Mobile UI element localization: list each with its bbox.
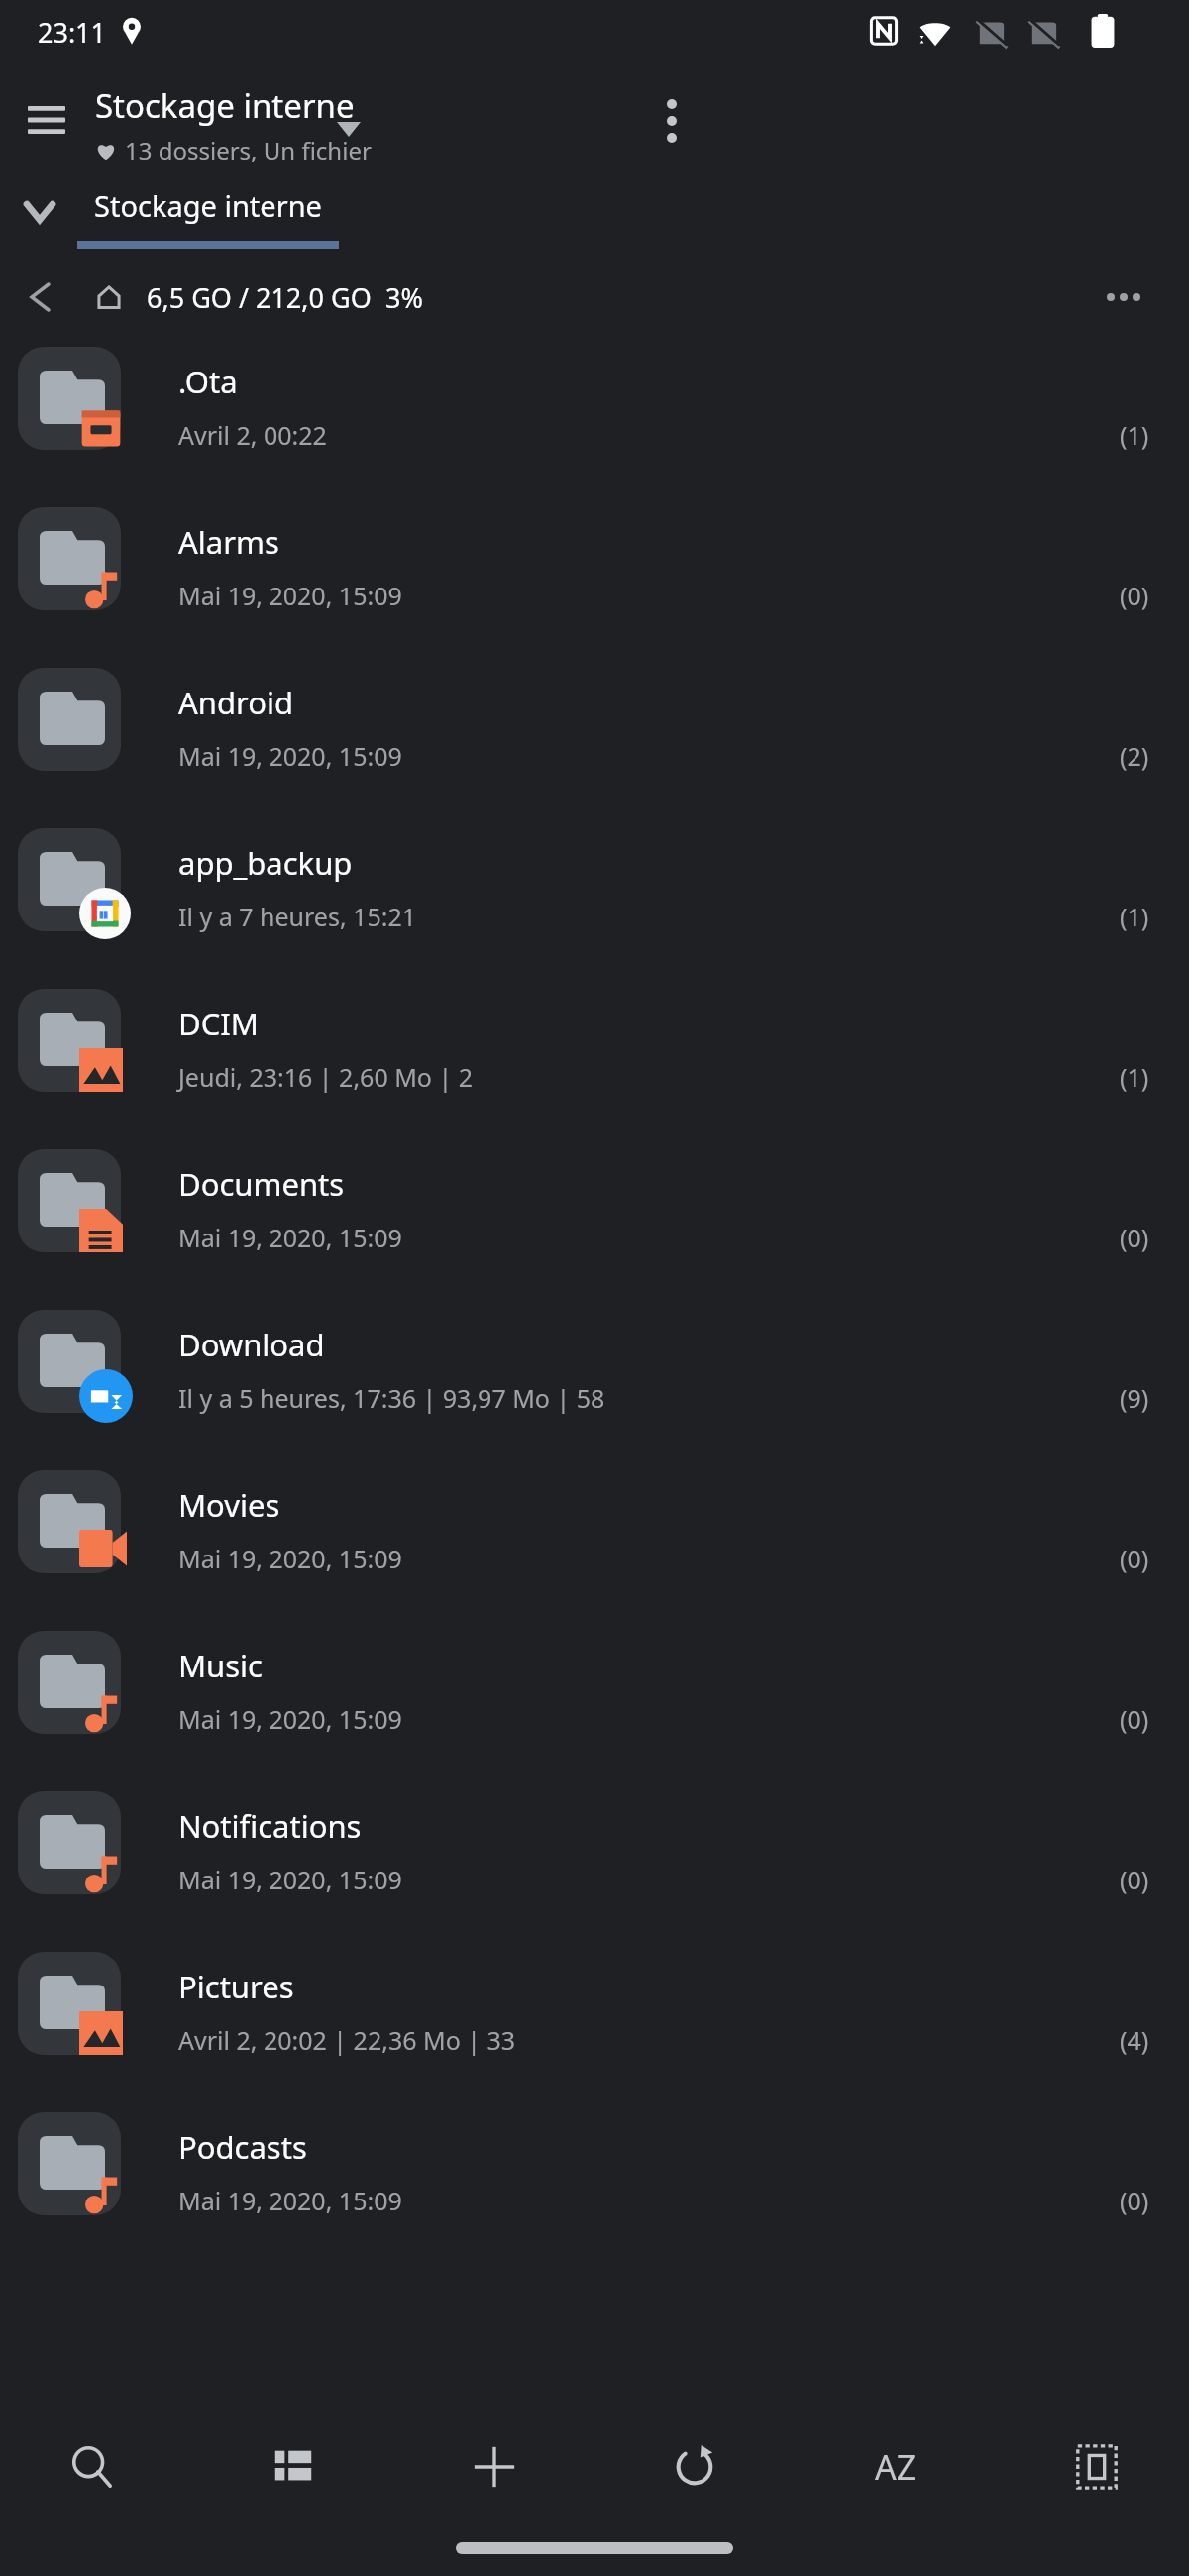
button[interactable]: View mode	[219, 2413, 368, 2522]
staticText: Jeudi, 23:16 | 2,60 Mo | 2	[178, 1060, 474, 1094]
staticText: Mai 19, 2020, 15:09	[178, 739, 402, 773]
staticText: AZ	[875, 2444, 917, 2490]
staticText: Music	[178, 1645, 264, 1686]
staticText: (0)	[1120, 579, 1149, 612]
button[interactable]: Notifications	[0, 1777, 1189, 1938]
staticText: .Ota	[178, 361, 238, 402]
button[interactable]: Path options	[1096, 269, 1151, 325]
staticText: Android	[178, 682, 294, 723]
staticText: (9)	[1120, 1381, 1149, 1415]
button[interactable]: app_backup	[0, 814, 1189, 975]
button[interactable]: Stockage interne	[77, 172, 339, 249]
button[interactable]: Documents	[0, 1135, 1189, 1296]
button[interactable]: Menu	[16, 89, 77, 151]
button[interactable]: Select all	[1023, 2413, 1171, 2522]
staticText: (0)	[1120, 1221, 1149, 1254]
button[interactable]: More options	[642, 91, 702, 151]
staticText: (0)	[1120, 2184, 1149, 2217]
button[interactable]: DCIM	[0, 975, 1189, 1135]
staticText: 3%	[385, 279, 423, 316]
staticText: Mai 19, 2020, 15:09	[178, 1542, 402, 1575]
staticText: app_backup	[178, 842, 353, 884]
button[interactable]: Sort	[821, 2413, 970, 2522]
staticText: (4)	[1120, 2023, 1149, 2057]
button[interactable]: Podcasts	[0, 2098, 1189, 2259]
staticText: (1)	[1120, 418, 1149, 452]
staticText: Pictures	[178, 1966, 294, 2007]
button[interactable]: Expand tabs	[10, 182, 69, 242]
button[interactable]: Music	[0, 1617, 1189, 1777]
button[interactable]: .Ota	[0, 333, 1189, 493]
staticText: Alarms	[178, 521, 279, 563]
staticText: DCIM	[178, 1003, 259, 1044]
button[interactable]: Back	[12, 269, 67, 325]
staticText: (1)	[1120, 900, 1149, 933]
staticText: (0)	[1120, 1542, 1149, 1575]
button[interactable]: Android	[0, 654, 1189, 814]
staticText: (1)	[1120, 1060, 1149, 1094]
staticText: Mai 19, 2020, 15:09	[178, 579, 402, 612]
button[interactable]: Alarms	[0, 493, 1189, 654]
button[interactable]: Refresh	[620, 2413, 769, 2522]
staticText: Download	[178, 1324, 325, 1365]
button[interactable]: Add	[420, 2413, 569, 2522]
staticText: Stockage interne	[94, 186, 322, 225]
staticText: 6,5 GO / 212,0 GO	[147, 279, 372, 316]
staticText: Mai 19, 2020, 15:09	[178, 1221, 402, 1254]
staticText: Notifications	[178, 1805, 362, 1847]
button[interactable]: Search	[18, 2413, 166, 2522]
staticText: Movies	[178, 1484, 280, 1526]
staticText: 23:11	[38, 14, 107, 51]
staticText: (2)	[1120, 739, 1149, 773]
staticText: Podcasts	[178, 2126, 307, 2168]
button[interactable]: Change storage	[327, 107, 371, 151]
staticText: (0)	[1120, 1863, 1149, 1896]
button[interactable]: Movies	[0, 1456, 1189, 1617]
staticText: Mai 19, 2020, 15:09	[178, 2184, 402, 2217]
button[interactable]: Download	[0, 1296, 1189, 1456]
staticText: Il y a 7 heures, 15:21	[178, 900, 417, 933]
staticText: Avril 2, 20:02 | 22,36 Mo | 33	[178, 2023, 516, 2057]
staticText: Mai 19, 2020, 15:09	[178, 1702, 402, 1736]
staticText: Avril 2, 00:22	[178, 418, 327, 452]
staticText: Mai 19, 2020, 15:09	[178, 1863, 402, 1896]
staticText: Il y a 5 heures, 17:36 | 93,97 Mo | 58	[178, 1381, 605, 1415]
button[interactable]: Home	[81, 269, 137, 325]
staticText: (0)	[1120, 1702, 1149, 1736]
staticText: Documents	[178, 1163, 345, 1205]
button[interactable]: Pictures	[0, 1938, 1189, 2098]
staticText: 13 dossiers, Un fichier	[125, 134, 372, 166]
staticText: Stockage interne	[95, 83, 355, 128]
